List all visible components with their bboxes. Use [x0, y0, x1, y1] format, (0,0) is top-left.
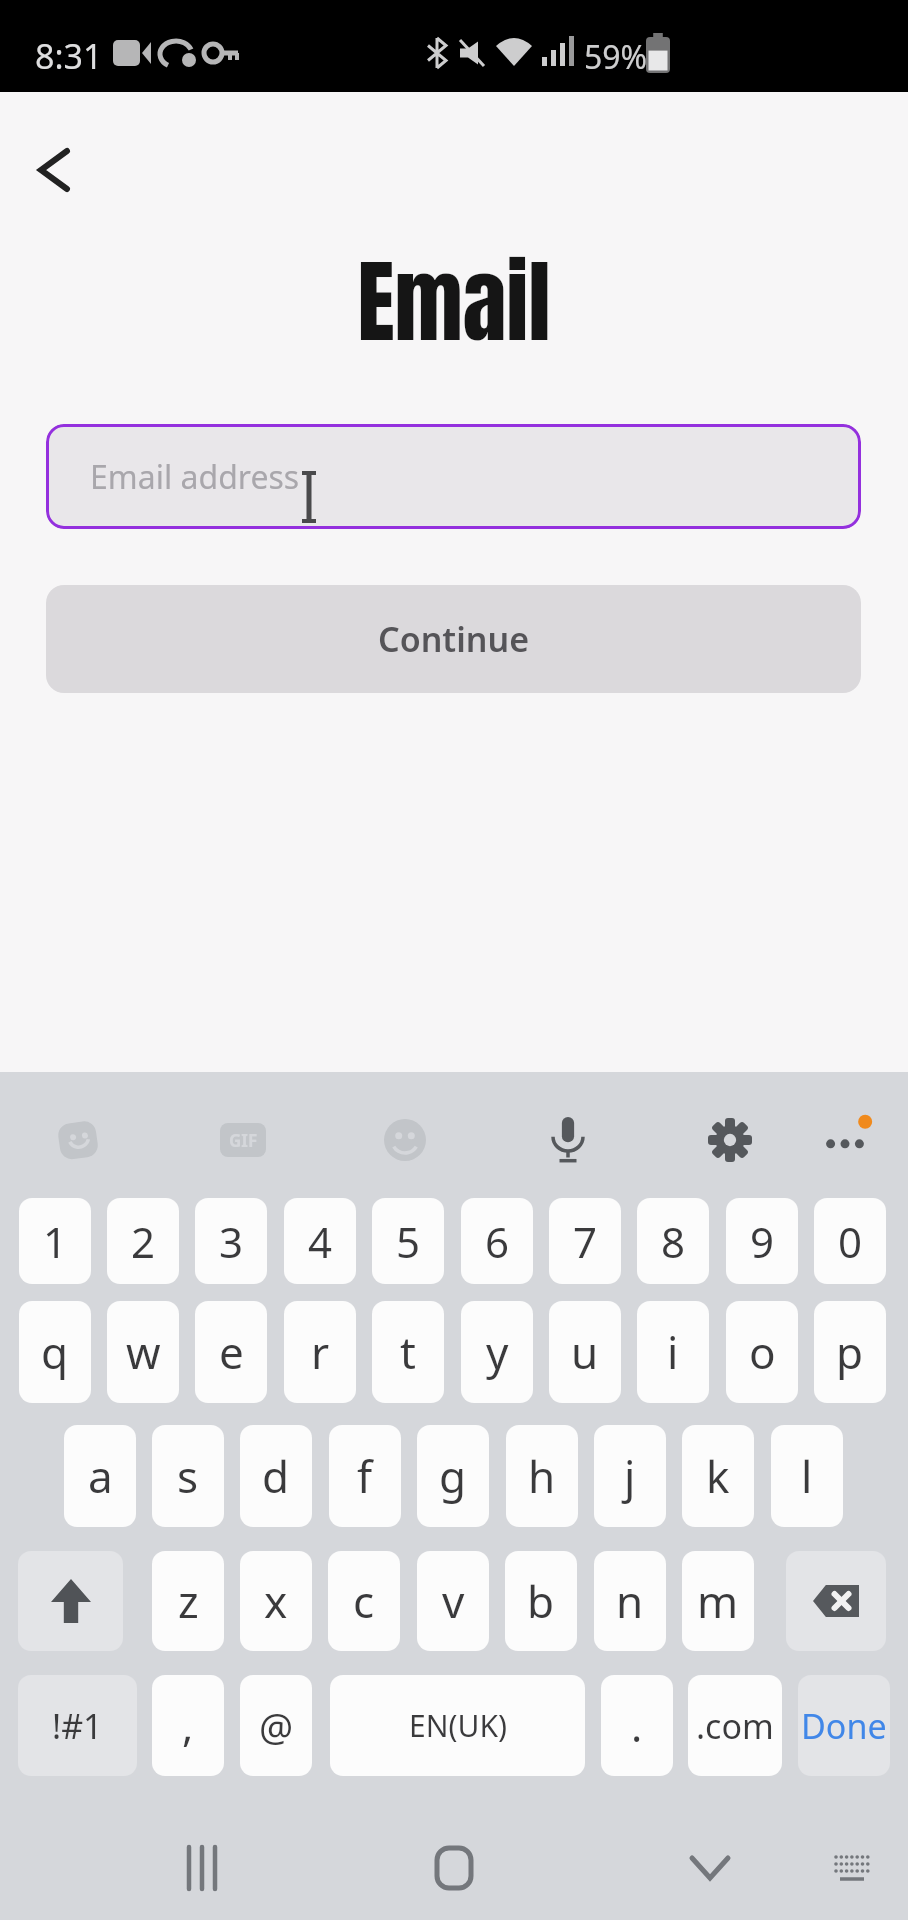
staticText: g: [439, 1446, 467, 1506]
staticText: 2: [131, 1213, 156, 1270]
staticText: 7: [573, 1213, 598, 1270]
button[interactable]: 6: [461, 1198, 533, 1284]
button[interactable]: x: [240, 1551, 312, 1651]
button[interactable]: [422, 1836, 486, 1900]
button[interactable]: o: [726, 1301, 798, 1403]
button[interactable]: GIF: [211, 1108, 275, 1172]
button[interactable]: 9: [726, 1198, 798, 1284]
staticText: l: [801, 1446, 813, 1506]
button[interactable]: [24, 140, 84, 200]
staticText: f: [357, 1446, 373, 1506]
staticText: j: [624, 1446, 636, 1506]
button[interactable]: i: [637, 1301, 709, 1403]
staticText: y: [486, 1322, 509, 1382]
staticText: k: [706, 1446, 730, 1506]
button[interactable]: g: [417, 1425, 489, 1527]
staticText: w: [126, 1322, 161, 1382]
button[interactable]: 2: [107, 1198, 179, 1284]
staticText: 0: [838, 1213, 863, 1270]
button[interactable]: p: [814, 1301, 886, 1403]
button[interactable]: d: [240, 1425, 312, 1527]
staticText: 9: [750, 1213, 775, 1270]
button[interactable]: [678, 1836, 742, 1900]
staticText: EN(UK): [409, 1705, 507, 1746]
button[interactable]: [698, 1108, 762, 1172]
button[interactable]: 3: [195, 1198, 267, 1284]
button[interactable]: Continue: [46, 585, 861, 693]
button[interactable]: s: [152, 1425, 224, 1527]
button[interactable]: e: [195, 1301, 267, 1403]
staticText: Email: [0, 234, 908, 369]
staticText: 5: [396, 1213, 421, 1270]
button[interactable]: 8: [637, 1198, 709, 1284]
staticText: z: [178, 1571, 199, 1631]
staticText: x: [264, 1571, 288, 1631]
staticText: 8: [661, 1213, 686, 1270]
staticText: p: [836, 1322, 864, 1382]
button[interactable]: 0: [814, 1198, 886, 1284]
button[interactable]: v: [417, 1551, 489, 1651]
button[interactable]: [813, 1108, 877, 1172]
staticText: n: [616, 1571, 644, 1631]
button[interactable]: @: [240, 1675, 312, 1776]
staticText: Done: [801, 1703, 887, 1749]
staticText: Continue: [378, 616, 530, 662]
button[interactable]: y: [461, 1301, 533, 1403]
button[interactable]: c: [328, 1551, 400, 1651]
staticText: h: [528, 1446, 556, 1506]
staticText: Email address: [90, 455, 300, 499]
staticText: ,: [182, 1697, 194, 1754]
button[interactable]: b: [505, 1551, 577, 1651]
button[interactable]: .com: [688, 1675, 782, 1776]
staticText: t: [400, 1322, 416, 1382]
staticText: 1: [43, 1213, 68, 1270]
button[interactable]: !#1: [18, 1675, 137, 1776]
button[interactable]: f: [329, 1425, 401, 1527]
staticText: v: [442, 1571, 465, 1631]
button[interactable]: .: [601, 1675, 673, 1776]
staticText: i: [667, 1322, 679, 1382]
button[interactable]: 1: [19, 1198, 91, 1284]
button[interactable]: t: [372, 1301, 444, 1403]
button[interactable]: [170, 1836, 234, 1900]
staticText: .: [631, 1697, 643, 1754]
staticText: 6: [485, 1213, 510, 1270]
button[interactable]: [786, 1551, 886, 1651]
button[interactable]: a: [64, 1425, 136, 1527]
staticText: b: [527, 1571, 555, 1631]
staticText: r: [311, 1322, 330, 1382]
button[interactable]: m: [682, 1551, 754, 1651]
staticText: 4: [308, 1213, 333, 1270]
button[interactable]: z: [152, 1551, 224, 1651]
button[interactable]: q: [19, 1301, 91, 1403]
button[interactable]: [48, 1108, 112, 1172]
staticText: 3: [219, 1213, 244, 1270]
staticText: u: [571, 1322, 599, 1382]
button[interactable]: 7: [549, 1198, 621, 1284]
button[interactable]: u: [549, 1301, 621, 1403]
staticText: q: [41, 1322, 69, 1382]
staticText: .com: [696, 1703, 774, 1749]
button[interactable]: Email address: [46, 424, 861, 529]
button[interactable]: EN(UK): [330, 1675, 585, 1776]
staticText: o: [749, 1322, 776, 1382]
staticText: s: [177, 1446, 199, 1506]
button[interactable]: [18, 1551, 123, 1651]
button[interactable]: l: [771, 1425, 843, 1527]
button[interactable]: ,: [152, 1675, 224, 1776]
button[interactable]: [373, 1108, 437, 1172]
staticText: d: [262, 1446, 290, 1506]
button[interactable]: n: [594, 1551, 666, 1651]
button[interactable]: w: [107, 1301, 179, 1403]
button[interactable]: [536, 1108, 600, 1172]
button[interactable]: Done: [798, 1675, 890, 1776]
staticText: GIF: [229, 1129, 258, 1152]
button[interactable]: 5: [372, 1198, 444, 1284]
button[interactable]: j: [594, 1425, 666, 1527]
staticText: !#1: [52, 1703, 103, 1749]
button[interactable]: h: [506, 1425, 578, 1527]
button[interactable]: k: [682, 1425, 754, 1527]
button[interactable]: r: [284, 1301, 356, 1403]
button[interactable]: [820, 1836, 884, 1900]
button[interactable]: 4: [284, 1198, 356, 1284]
